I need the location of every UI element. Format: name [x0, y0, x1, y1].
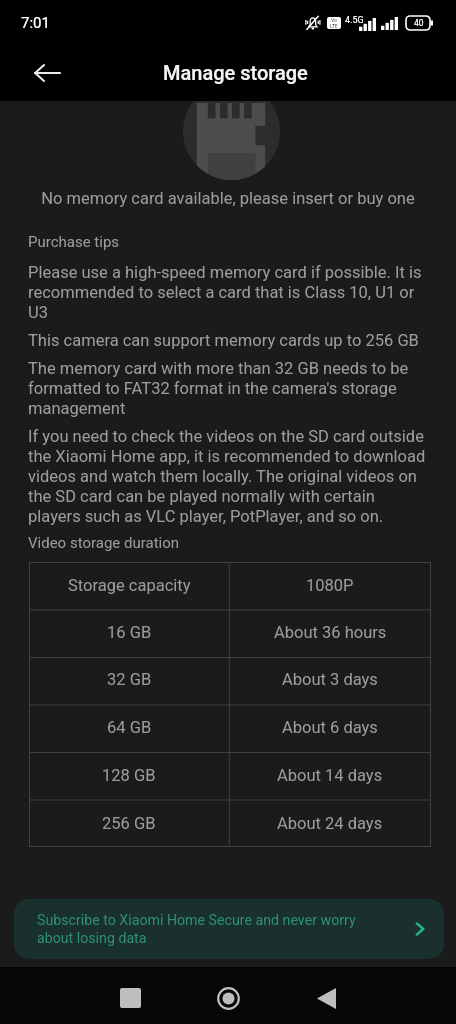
staticText: 4.5G — [345, 15, 364, 26]
staticText: 256 GB — [102, 814, 156, 833]
button[interactable]: Back — [20, 46, 74, 100]
staticText: 16 GB — [107, 623, 152, 642]
staticText: Vo — [331, 17, 337, 23]
staticText: Purchase tips — [28, 233, 120, 251]
staticText: No memory card available, please insert … — [20, 189, 436, 208]
staticText: About 14 days — [277, 766, 383, 785]
staticText: The memory card with more than 32 GB nee… — [28, 359, 428, 418]
staticText: Manage storage — [163, 61, 308, 84]
staticText: About 3 days — [282, 670, 378, 689]
staticText: Storage capacity — [68, 576, 191, 595]
staticText: 40 — [414, 18, 424, 28]
staticText: 64 GB — [107, 718, 152, 737]
staticText: 7:01 — [21, 14, 50, 32]
staticText: LTE — [330, 23, 338, 29]
staticText: 128 GB — [102, 766, 156, 785]
button[interactable]: Back — [302, 974, 350, 1022]
staticText: Please use a high-speed memory card if p… — [28, 263, 428, 322]
staticText: 32 GB — [107, 670, 152, 689]
staticText: If you need to check the videos on the S… — [28, 427, 428, 526]
staticText: Video storage duration — [28, 534, 180, 552]
staticText: About 24 days — [277, 814, 383, 833]
staticText: 1080P — [306, 576, 354, 595]
staticText: This camera can support memory cards up … — [28, 331, 419, 350]
button[interactable]: Subscribe to Xiaomi Home Secure and neve… — [14, 899, 444, 959]
staticText: Subscribe to Xiaomi Home Secure and neve… — [37, 912, 362, 946]
button[interactable]: Home — [204, 974, 252, 1022]
button[interactable]: Recent apps — [106, 974, 154, 1022]
staticText: About 6 days — [282, 718, 378, 737]
staticText: About 36 hours — [274, 623, 387, 642]
